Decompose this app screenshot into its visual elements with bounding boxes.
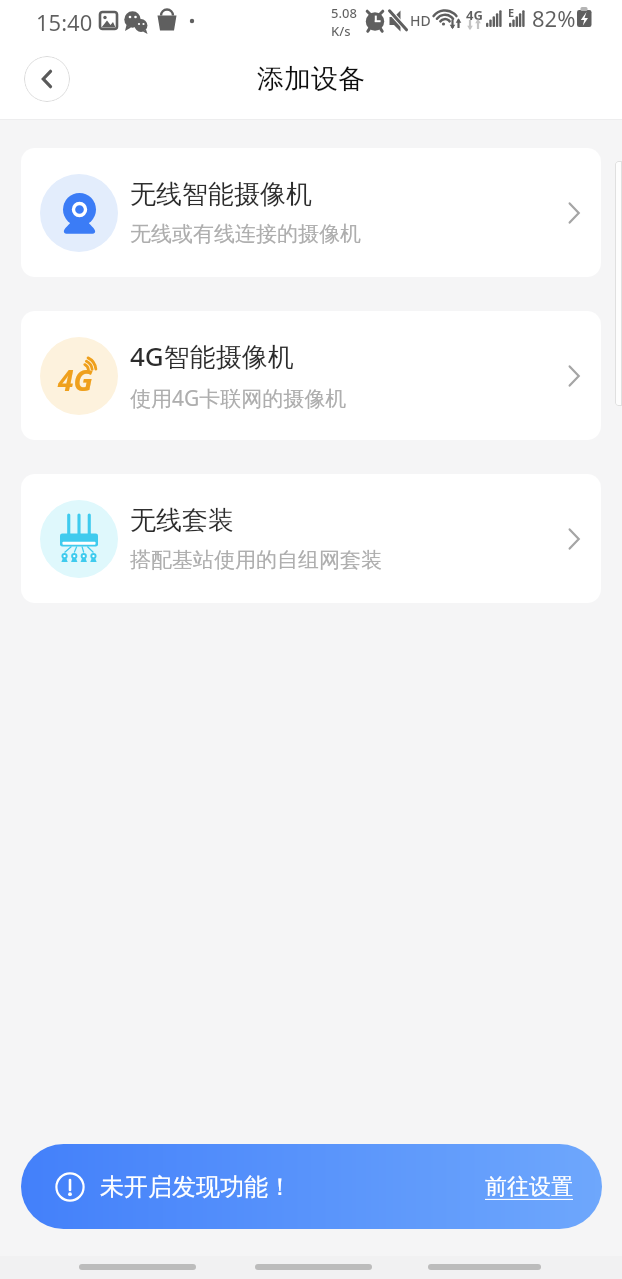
staticText: 15:40 bbox=[36, 7, 93, 37]
staticText: HD bbox=[410, 11, 431, 30]
staticText: 5.08 bbox=[331, 4, 357, 22]
staticText: 82% bbox=[532, 3, 576, 33]
staticText: 4G智能摄像机 bbox=[130, 338, 294, 374]
button[interactable]: 4G bbox=[21, 311, 601, 440]
staticText: 无线智能摄像机 bbox=[130, 178, 312, 211]
staticText: 添加设备 bbox=[257, 62, 365, 96]
staticText: 未开启发现功能！ bbox=[100, 1172, 292, 1202]
staticText: 搭配基站使用的自组网套装 bbox=[130, 547, 382, 573]
button[interactable]: 无线智能摄像机 bbox=[21, 148, 601, 277]
staticText: E bbox=[508, 5, 515, 20]
staticText: 使用4G卡联网的摄像机 bbox=[130, 384, 347, 413]
button[interactable]: 返回 bbox=[24, 56, 70, 102]
staticText: 4G bbox=[466, 6, 483, 24]
staticText: 无线或有线连接的摄像机 bbox=[130, 221, 361, 247]
staticText: K/s bbox=[331, 22, 351, 40]
button[interactable]: 未开启发现功能！ bbox=[21, 1144, 602, 1229]
button[interactable]: 前往设置 bbox=[485, 1173, 573, 1201]
staticText: 4G bbox=[58, 361, 93, 399]
button[interactable]: 无线套装 bbox=[21, 474, 601, 603]
staticText: 无线套装 bbox=[130, 504, 234, 537]
